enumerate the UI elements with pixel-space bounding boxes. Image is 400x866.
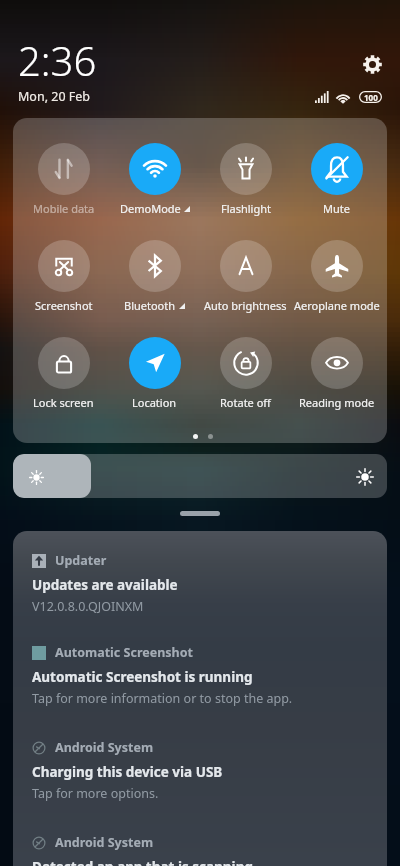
staticText: Rotate off xyxy=(220,395,271,410)
staticText: DemoMode xyxy=(120,201,181,216)
button[interactable]: Rotate off xyxy=(200,337,291,417)
button[interactable]: Android System xyxy=(13,739,387,802)
staticText: Charging this device via USB xyxy=(32,763,223,781)
button[interactable]: Aeroplane mode xyxy=(291,240,382,320)
staticText: Mon, 20 Feb xyxy=(18,88,91,105)
staticText: 100 xyxy=(364,92,378,103)
staticText: Updater xyxy=(55,552,107,569)
staticText: Flashlight xyxy=(221,201,271,216)
staticText: Automatic Screenshot is running xyxy=(32,668,253,686)
staticText: Lock screen xyxy=(33,395,94,410)
staticText: Reading mode xyxy=(299,395,375,410)
staticText: Aeroplane mode xyxy=(294,298,380,313)
staticText: Updates are available xyxy=(32,576,178,594)
staticText: Auto brightness xyxy=(204,298,287,313)
staticText: Android System xyxy=(55,834,154,851)
staticText: Tap for more options. xyxy=(32,785,159,802)
button[interactable]: Flashlight xyxy=(200,143,291,223)
staticText: Mobile data xyxy=(33,201,95,216)
staticText: 2:36 xyxy=(18,33,97,87)
staticText: V12.0.8.0.QJOINXM xyxy=(32,598,144,615)
button[interactable]: Updater xyxy=(13,552,387,615)
button[interactable]: Reading mode xyxy=(291,337,382,417)
button[interactable]: DemoMode xyxy=(109,143,200,223)
button[interactable]: Location xyxy=(109,337,200,417)
button[interactable]: Android System xyxy=(13,834,387,866)
staticText: Android System xyxy=(55,739,154,756)
staticText: Mute xyxy=(323,201,350,216)
button[interactable]: Lock screen xyxy=(18,337,109,417)
staticText: Bluetooth xyxy=(124,298,176,313)
staticText: Detected an app that is scanning xyxy=(32,858,253,866)
staticText: Tap for more information or to stop the … xyxy=(32,690,293,707)
button[interactable]: Settings xyxy=(363,55,382,74)
button[interactable]: Bluetooth xyxy=(109,240,200,320)
button[interactable]: Mute xyxy=(291,143,382,223)
staticText: Screenshot xyxy=(35,298,93,313)
button[interactable]: Brightness xyxy=(13,454,387,498)
button[interactable]: Auto brightness xyxy=(200,240,291,320)
button[interactable]: Mobile data xyxy=(18,143,109,223)
staticText: Location xyxy=(132,395,177,410)
button[interactable]: Automatic Screenshot xyxy=(13,644,387,707)
staticText: Automatic Screenshot xyxy=(55,644,193,661)
button[interactable]: Screenshot xyxy=(18,240,109,320)
